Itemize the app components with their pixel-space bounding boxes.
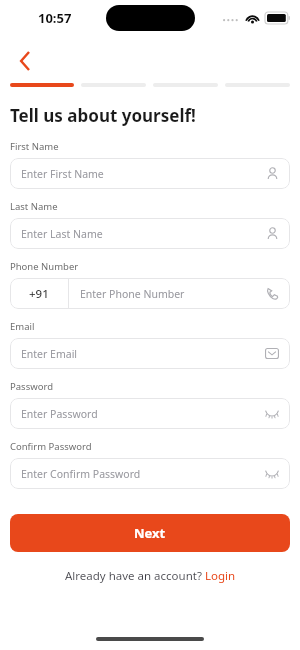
button[interactable]: Next xyxy=(10,514,290,552)
button[interactable]: Login xyxy=(205,568,236,584)
staticText: Enter Confirm Password xyxy=(21,467,265,481)
staticText: Enter First Name xyxy=(21,167,266,181)
button[interactable]: Enter Confirm Password xyxy=(10,458,290,489)
staticText: Next xyxy=(134,524,166,542)
staticText: Enter Email xyxy=(21,347,265,361)
button[interactable]: Enter Password xyxy=(10,398,290,429)
button[interactable]: Enter Email xyxy=(10,338,290,369)
staticText: Enter Phone Number xyxy=(80,287,266,301)
staticText: Last Name xyxy=(10,200,58,213)
button[interactable]: Enter First Name xyxy=(10,158,290,189)
staticText: Email xyxy=(10,320,35,333)
button[interactable]: +91 xyxy=(10,278,290,309)
staticText: +91 xyxy=(29,286,49,302)
staticText: Enter Last Name xyxy=(21,227,266,241)
button[interactable]: Back xyxy=(8,44,42,78)
staticText: 10:57 xyxy=(38,9,72,27)
staticText: Confirm Password xyxy=(10,440,92,453)
staticText: Already have an account? xyxy=(65,568,205,584)
staticText: Password xyxy=(10,380,53,393)
staticText: Phone Number xyxy=(10,260,79,273)
staticText: Enter Password xyxy=(21,407,265,421)
staticText: Tell us about yourself! xyxy=(10,104,196,127)
button[interactable]: Enter Last Name xyxy=(10,218,290,249)
staticText: Login xyxy=(205,568,236,584)
staticText: First Name xyxy=(10,140,59,153)
